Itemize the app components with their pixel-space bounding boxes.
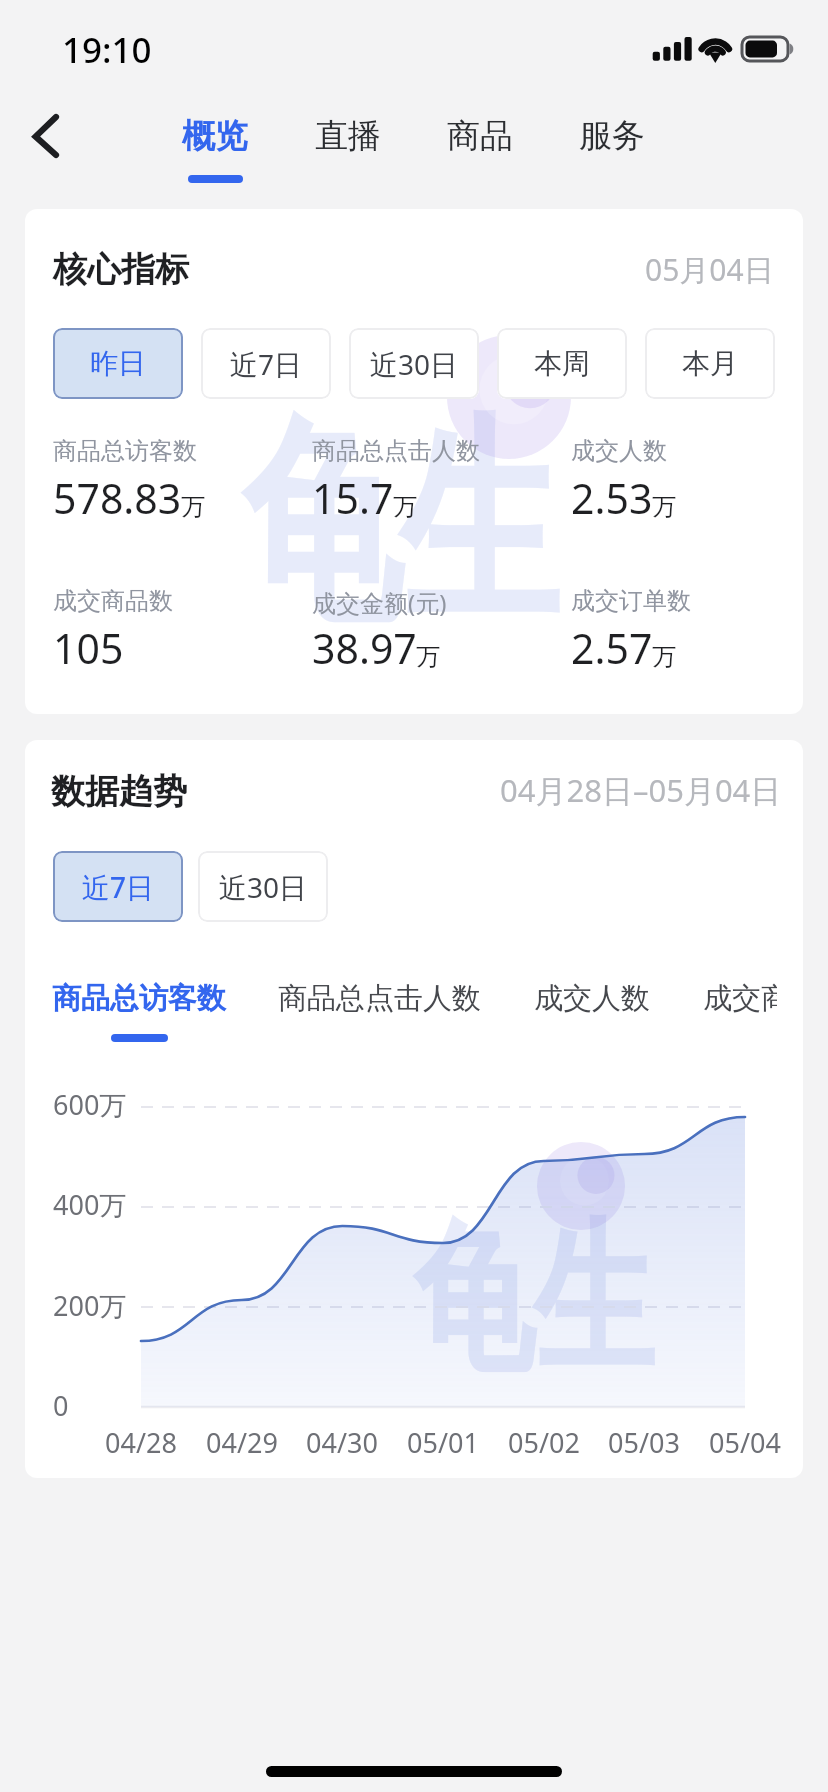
- staticText: 万: [416, 642, 440, 672]
- staticText: 成交人数: [534, 980, 650, 1017]
- staticText: 万: [652, 492, 676, 522]
- button[interactable]: 商品总访客数: [52, 980, 226, 1052]
- staticText: 数据趋势: [51, 770, 187, 813]
- button[interactable]: 成交商品数: [703, 980, 777, 1052]
- staticText: 本周: [534, 346, 590, 381]
- staticText: 万: [181, 492, 205, 522]
- staticText: 龟生: [413, 1198, 653, 1402]
- staticText: 成交人数: [571, 436, 667, 466]
- button[interactable]: 成交人数: [534, 980, 650, 1052]
- staticText: 近30日: [370, 345, 459, 383]
- button[interactable]: 近7日: [201, 328, 331, 399]
- staticText: 近30日: [219, 868, 308, 906]
- staticText: 商品总访客数: [53, 436, 197, 466]
- button[interactable]: 本月: [645, 328, 775, 399]
- button[interactable]: 近30日: [349, 328, 479, 399]
- button[interactable]: 服务: [556, 115, 668, 201]
- staticText: 05/01: [407, 1424, 479, 1461]
- staticText: 直播: [315, 115, 381, 157]
- staticText: 400万: [53, 1186, 127, 1223]
- staticText: 200万: [53, 1287, 127, 1324]
- staticText: 105: [53, 620, 124, 676]
- staticText: 04月28日–05月04日: [500, 769, 782, 811]
- staticText: 成交商品数: [703, 980, 777, 1017]
- staticText: 万: [393, 492, 417, 522]
- staticText: 05月04日: [645, 249, 774, 290]
- button[interactable]: 概览: [159, 115, 271, 201]
- staticText: 近7日: [230, 345, 303, 383]
- staticText: 成交商品数: [53, 586, 173, 616]
- staticText: 概览: [182, 115, 248, 157]
- staticText: 商品总点击人数: [312, 436, 480, 466]
- staticText: 服务: [579, 115, 645, 157]
- staticText: 核心指标: [53, 248, 189, 291]
- staticText: 04/29: [206, 1424, 278, 1461]
- staticText: 商品总访客数: [52, 980, 226, 1017]
- staticText: 38.97: [312, 620, 417, 676]
- button[interactable]: 本周: [497, 328, 627, 399]
- button[interactable]: 近30日: [198, 851, 328, 922]
- staticText: 04/30: [306, 1424, 378, 1461]
- button[interactable]: 近7日: [53, 851, 183, 922]
- staticText: 578.83: [53, 470, 182, 526]
- staticText: 04/28: [105, 1424, 177, 1461]
- button[interactable]: 直播: [292, 115, 404, 201]
- staticText: 15.7: [312, 470, 394, 526]
- staticText: 2.57: [571, 620, 653, 676]
- staticText: 05/04: [709, 1424, 781, 1461]
- staticText: 成交订单数: [571, 586, 691, 616]
- staticText: 龟生: [241, 389, 557, 664]
- staticText: 昨日: [90, 346, 146, 381]
- button[interactable]: 昨日: [53, 328, 183, 399]
- staticText: 19:10: [62, 26, 152, 74]
- staticText: 05/02: [508, 1424, 580, 1461]
- button[interactable]: 商品总点击人数: [278, 980, 481, 1052]
- staticText: 近7日: [82, 868, 155, 906]
- staticText: 商品总点击人数: [278, 980, 481, 1017]
- staticText: 05/03: [608, 1424, 680, 1461]
- button[interactable]: 商品: [424, 115, 536, 201]
- staticText: 0: [53, 1387, 69, 1424]
- staticText: 600万: [53, 1086, 127, 1123]
- button[interactable]: Back: [10, 100, 82, 172]
- staticText: 万: [652, 642, 676, 672]
- staticText: 本月: [682, 346, 738, 381]
- staticText: 2.53: [571, 470, 653, 526]
- staticText: 商品: [447, 115, 513, 157]
- staticText: 成交金额(元): [312, 586, 447, 619]
